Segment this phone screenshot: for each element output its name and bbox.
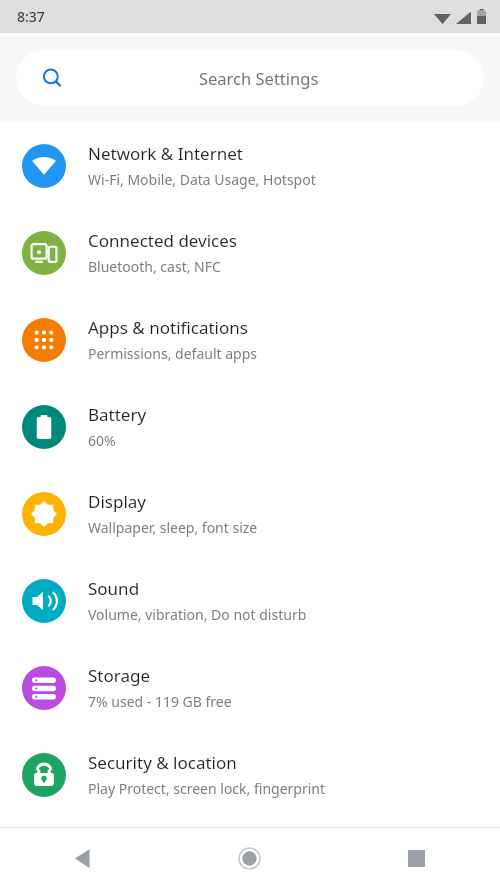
staticText: 8:37	[17, 7, 45, 26]
staticText: Display	[88, 490, 146, 513]
staticText: Connected devices	[88, 229, 238, 252]
staticText: Bluetooth, cast, NFC	[88, 257, 221, 276]
staticText: Wallpaper, sleep, font size	[88, 518, 258, 537]
staticText: Search Settings	[199, 67, 319, 89]
button[interactable]: Apps & notifications	[0, 296, 500, 383]
staticText: Sound	[88, 577, 140, 600]
button[interactable]: Search	[16, 50, 484, 106]
staticText: Apps & notifications	[88, 316, 248, 339]
staticText: 7% used - 119 GB free	[88, 692, 232, 711]
button[interactable]: Connected devices	[0, 209, 500, 296]
button[interactable]: Recent apps	[333, 828, 500, 889]
button[interactable]: Home	[166, 828, 333, 889]
button[interactable]: Display	[0, 470, 500, 557]
button[interactable]: Back	[0, 828, 166, 889]
button[interactable]: Network & Internet	[0, 122, 500, 209]
staticText: Permissions, default apps	[88, 344, 258, 363]
button[interactable]: Storage	[0, 644, 500, 731]
staticText: Play Protect, screen lock, fingerprint	[88, 779, 326, 798]
staticText: Wi-Fi, Mobile, Data Usage, Hotspot	[88, 170, 316, 189]
staticText: Volume, vibration, Do not disturb	[88, 605, 307, 624]
staticText: Battery	[88, 403, 147, 426]
other: Search	[42, 68, 63, 89]
button[interactable]: Sound	[0, 557, 500, 644]
button[interactable]: Security & location	[0, 731, 500, 818]
staticText: Network & Internet	[88, 142, 243, 165]
staticText: Storage	[88, 664, 151, 687]
button[interactable]: Battery	[0, 383, 500, 470]
staticText: Security & location	[88, 751, 237, 774]
staticText: 60%	[88, 431, 116, 450]
